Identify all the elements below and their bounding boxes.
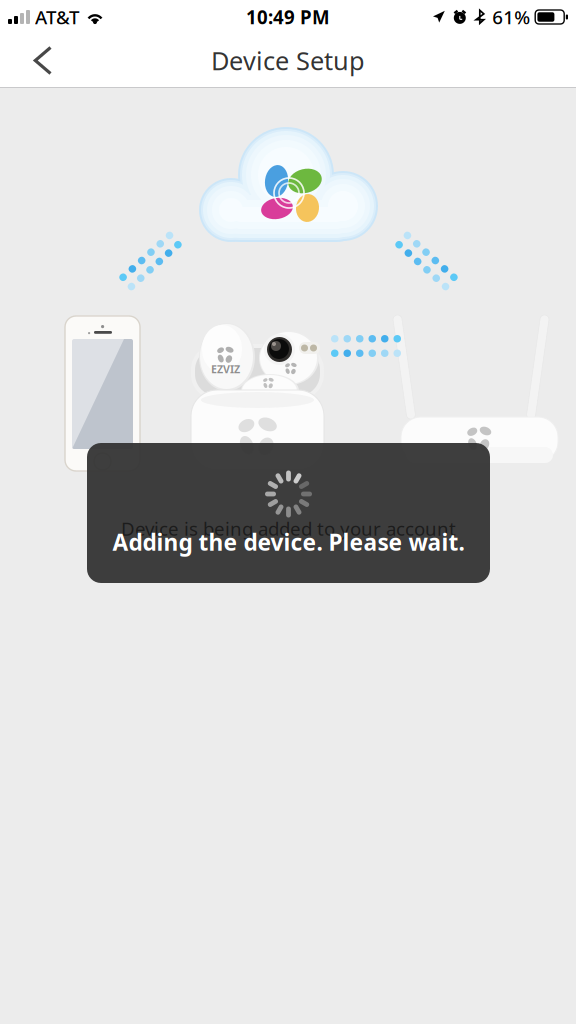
staticText: AT&T — [35, 5, 79, 29]
staticText: EZVIZ — [211, 362, 240, 376]
staticText: Device Setup — [211, 44, 365, 77]
button[interactable]: Back — [0, 34, 73, 86]
staticText: Device is being added to your account — [121, 516, 456, 541]
staticText: 61% — [492, 5, 530, 29]
staticText: EZVIZ — [261, 389, 280, 398]
staticText: Adding the device. Please wait. — [112, 527, 464, 557]
staticText: 10:49 PM — [246, 5, 330, 29]
